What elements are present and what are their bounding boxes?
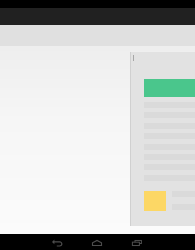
button[interactable]: Home bbox=[87, 234, 107, 250]
button[interactable]: Recent apps bbox=[127, 234, 147, 250]
button[interactable]: Back bbox=[47, 234, 67, 250]
button[interactable] bbox=[130, 52, 195, 226]
